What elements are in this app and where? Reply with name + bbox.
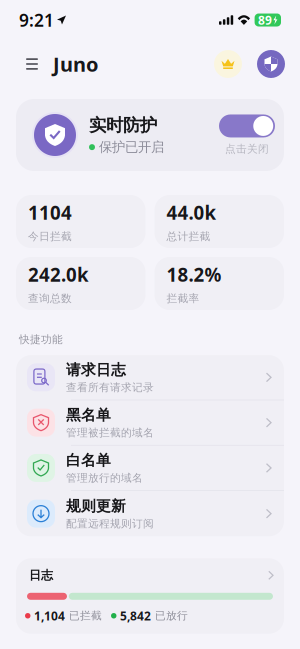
- staticText: 今日拦截: [28, 230, 72, 243]
- staticText: 日志: [29, 568, 53, 583]
- staticText: 拦截率: [166, 292, 199, 305]
- button[interactable]: 请求日志: [16, 355, 284, 400]
- staticText: 点击关闭: [225, 142, 269, 155]
- button[interactable]: 规则更新: [16, 491, 284, 536]
- staticText: 实时防护: [89, 115, 157, 136]
- button[interactable]: Premium: [214, 50, 242, 78]
- staticText: 配置远程规则订阅: [66, 517, 154, 530]
- staticText: 已放行: [155, 609, 188, 622]
- staticText: 查询总数: [28, 292, 72, 305]
- staticText: 44.0k: [166, 200, 216, 225]
- staticText: 5,842: [120, 608, 151, 624]
- staticText: 1104: [28, 200, 72, 225]
- staticText: 9:21: [19, 8, 54, 31]
- staticText: 查看所有请求记录: [66, 381, 154, 394]
- staticText: 1,104: [34, 608, 65, 624]
- button[interactable]: 日志: [16, 558, 284, 592]
- button[interactable]: 黑名单: [16, 400, 284, 446]
- staticText: 总计拦截: [166, 230, 210, 243]
- staticText: 18.2%: [166, 262, 221, 287]
- staticText: 管理被拦截的域名: [66, 426, 154, 439]
- staticText: 89: [258, 12, 272, 28]
- staticText: 快捷功能: [19, 333, 63, 346]
- staticText: 规则更新: [66, 497, 126, 515]
- staticText: 管理放行的域名: [66, 471, 143, 484]
- staticText: 保护已开启: [99, 139, 164, 155]
- button[interactable]: Protection status: [257, 50, 285, 78]
- button[interactable]: 白名单: [16, 446, 284, 491]
- staticText: Juno: [53, 51, 99, 77]
- staticText: 黑名单: [66, 406, 111, 424]
- staticText: 242.0k: [28, 262, 89, 287]
- staticText: 已拦截: [69, 609, 102, 622]
- staticText: 请求日志: [66, 361, 126, 379]
- staticText: 白名单: [66, 451, 111, 469]
- button[interactable]: Menu: [20, 52, 44, 76]
